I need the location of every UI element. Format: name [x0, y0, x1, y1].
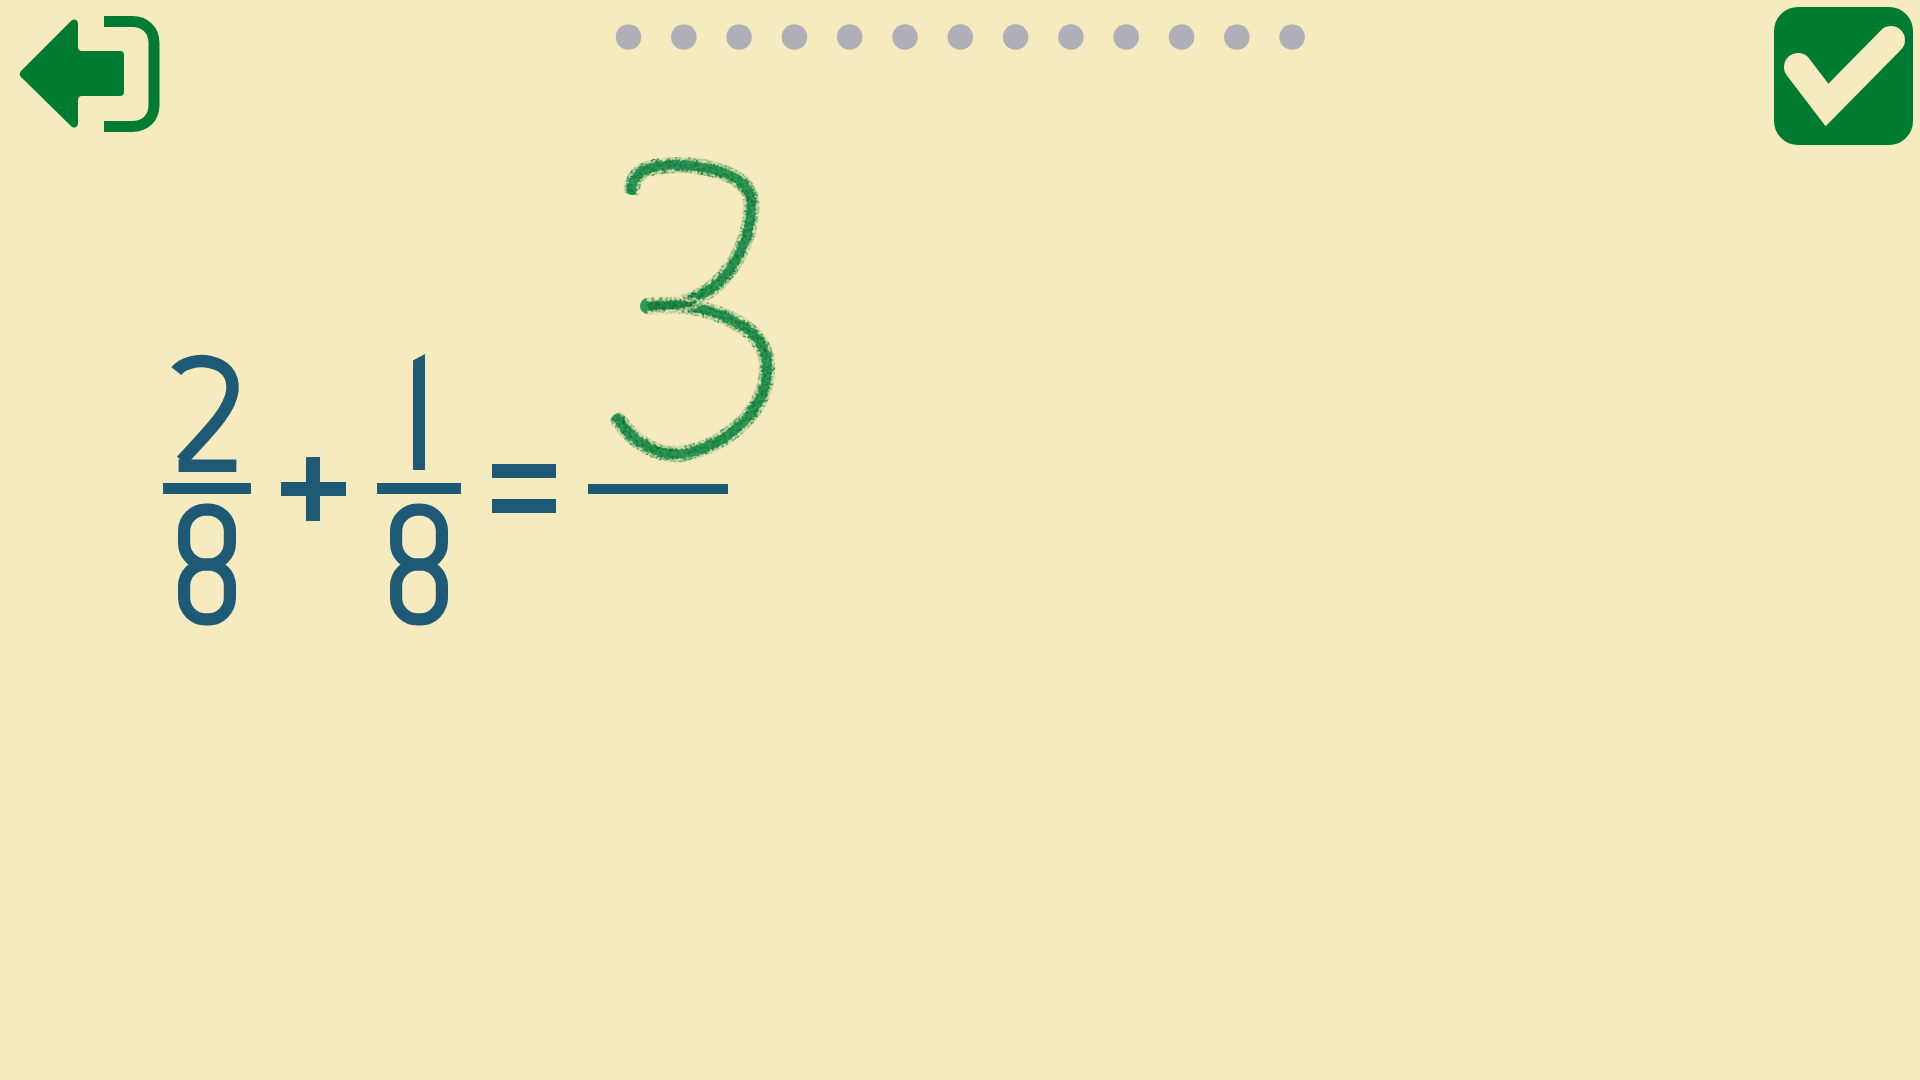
button[interactable]: Back — [8, 8, 178, 140]
button[interactable]: Answer numerator — [570, 150, 750, 510]
button[interactable]: Check answer — [1774, 7, 1913, 145]
